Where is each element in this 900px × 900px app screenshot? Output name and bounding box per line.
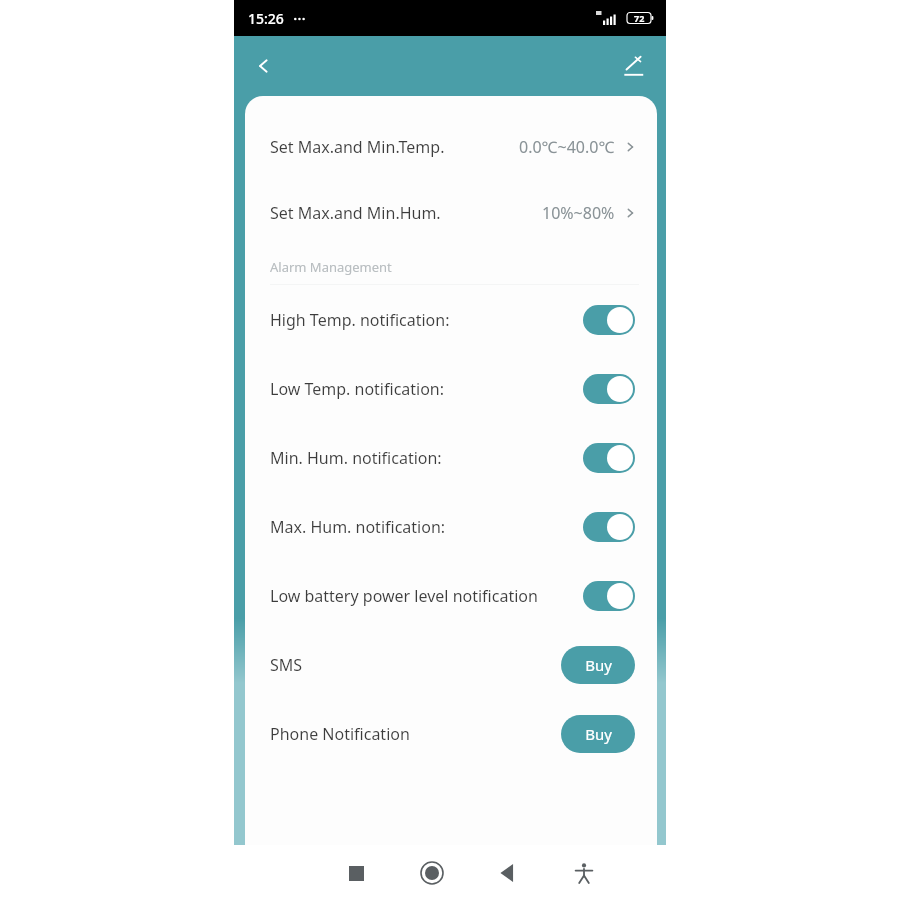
button[interactable]: Toggle on xyxy=(583,512,635,542)
staticText: 15:26 xyxy=(248,9,284,28)
staticText: Set Max.and Min.Temp. xyxy=(270,136,445,158)
staticText: Max. Hum. notification: xyxy=(270,516,446,538)
button[interactable]: Set Max.and Min.Hum. xyxy=(245,188,657,238)
staticText: 10%~80% xyxy=(542,202,615,224)
button[interactable]: Edit xyxy=(612,44,656,88)
staticText: Low Temp. notification: xyxy=(270,378,445,400)
button[interactable]: Toggle on xyxy=(583,305,635,335)
staticText: Buy xyxy=(585,724,612,744)
button[interactable]: Recents xyxy=(334,851,378,895)
button[interactable]: Toggle on xyxy=(583,443,635,473)
button[interactable]: Back xyxy=(486,851,530,895)
staticText: Set Max.and Min.Hum. xyxy=(270,202,441,224)
button[interactable]: High Temp. notification: xyxy=(245,285,657,354)
button[interactable]: Max. Hum. notification: xyxy=(245,492,657,561)
button[interactable]: Buy xyxy=(561,646,635,684)
button[interactable]: Toggle on xyxy=(583,374,635,404)
button[interactable]: Toggle on xyxy=(583,581,635,611)
staticText: 0.0℃~40.0℃ xyxy=(519,136,615,158)
button[interactable]: Low battery power level notification xyxy=(245,561,657,630)
button[interactable]: Accessibility xyxy=(562,851,606,895)
staticText: Buy xyxy=(585,655,612,675)
button[interactable]: Set Max.and Min.Temp. xyxy=(245,122,657,172)
button[interactable]: Buy xyxy=(561,715,635,753)
staticText: Phone Notification xyxy=(270,723,410,745)
staticText: High Temp. notification: xyxy=(270,309,450,331)
staticText: Low battery power level notification xyxy=(270,585,538,607)
button[interactable]: Min. Hum. notification: xyxy=(245,423,657,492)
staticText: Min. Hum. notification: xyxy=(270,447,442,469)
staticText: 72 xyxy=(634,12,645,24)
button[interactable]: Low Temp. notification: xyxy=(245,354,657,423)
staticText: SMS xyxy=(270,654,303,676)
button[interactable]: Home xyxy=(410,851,454,895)
button[interactable]: Back xyxy=(242,44,286,88)
staticText: Alarm Management xyxy=(270,258,392,276)
